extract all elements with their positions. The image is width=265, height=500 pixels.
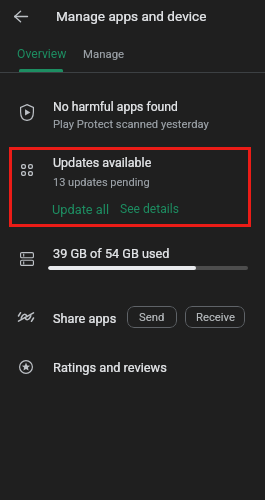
button[interactable]: Manage xyxy=(74,40,133,73)
staticText: No harmful apps found xyxy=(53,100,178,114)
staticText: Manage apps and device xyxy=(56,8,207,24)
staticText: See details xyxy=(120,202,179,216)
staticText: Send xyxy=(139,311,165,324)
button[interactable] xyxy=(0,240,265,280)
button[interactable] xyxy=(0,300,265,333)
staticText: Update all xyxy=(52,202,109,217)
staticText: Share apps xyxy=(53,311,117,326)
staticText: Ratings and reviews xyxy=(53,360,167,375)
staticText: Updates available xyxy=(53,155,152,170)
button[interactable]: Send xyxy=(127,306,177,328)
button[interactable]: Update all xyxy=(48,200,109,218)
staticText: Receive xyxy=(196,311,235,324)
staticText: Play Protect scanned yesterday xyxy=(53,118,209,131)
staticText: Manage xyxy=(83,47,125,60)
button[interactable]: Back xyxy=(7,3,34,30)
button[interactable]: Overview xyxy=(8,40,74,73)
staticText: 13 updates pending xyxy=(53,176,150,189)
staticText: Overview xyxy=(17,47,67,61)
button[interactable] xyxy=(0,352,265,382)
button[interactable]: See details xyxy=(116,200,179,218)
button[interactable]: Receive xyxy=(185,306,245,328)
button[interactable] xyxy=(0,90,265,135)
button[interactable] xyxy=(0,150,265,220)
staticText: 39 GB of 54 GB used xyxy=(53,246,170,261)
